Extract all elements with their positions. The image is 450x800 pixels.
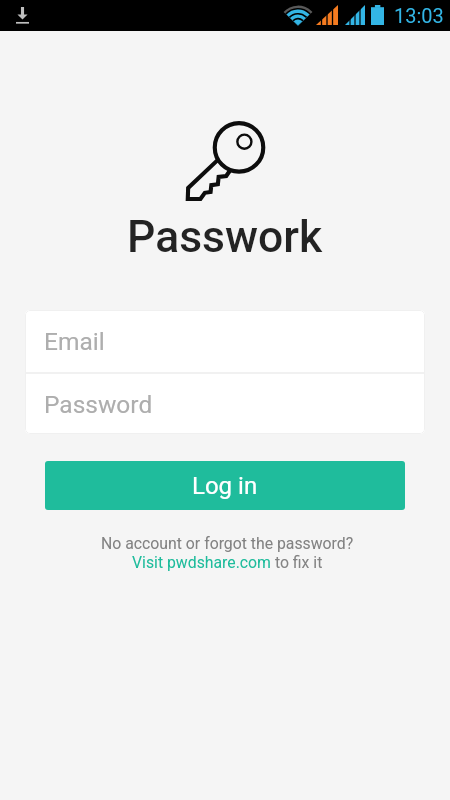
button[interactable]: Visit pwdshare.com (132, 553, 271, 572)
button[interactable]: Password (25, 374, 425, 434)
staticText: to fix it (271, 553, 323, 572)
staticText: Log in (192, 472, 258, 500)
button[interactable]: Email (25, 310, 425, 372)
staticText: 13:03 (394, 4, 444, 27)
button[interactable]: Log in (45, 461, 405, 510)
staticText: No account or forgot the password? (101, 534, 354, 553)
other: Downloading (16, 7, 29, 24)
staticText: Password (44, 390, 153, 419)
staticText: Email (44, 327, 105, 356)
staticText: Passwork (127, 211, 323, 263)
